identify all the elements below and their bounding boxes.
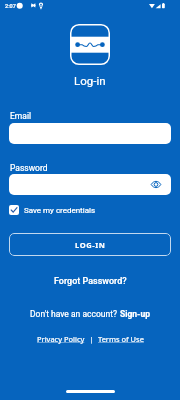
staticText: |: [85, 335, 98, 344]
button[interactable]: Privacy Policy: [37, 334, 85, 344]
button[interactable]: Sign-up: [120, 309, 150, 319]
button[interactable]: [9, 123, 171, 144]
staticText: Terms of Use: [98, 334, 144, 344]
staticText: Password: [10, 163, 48, 173]
button[interactable]: Terms of Use: [98, 334, 144, 344]
staticText: Sign-up: [120, 309, 150, 319]
button[interactable]: Forgot Password?: [48, 274, 133, 289]
staticText: LOG-IN: [75, 240, 106, 250]
staticText: Forgot Password?: [54, 276, 127, 287]
staticText: Log-in: [74, 74, 106, 87]
staticText: Don't have an account?: [30, 309, 120, 319]
staticText: 2:07: [5, 3, 16, 9]
button[interactable]: Save my credentials: [9, 205, 96, 215]
button[interactable]: LOG-IN: [9, 233, 171, 256]
staticText: Email: [10, 111, 32, 121]
button[interactable]: Show password: [9, 174, 171, 195]
button[interactable]: Show password: [150, 180, 162, 189]
staticText: Save my credentials: [24, 206, 96, 215]
staticText: Privacy Policy: [37, 334, 85, 344]
